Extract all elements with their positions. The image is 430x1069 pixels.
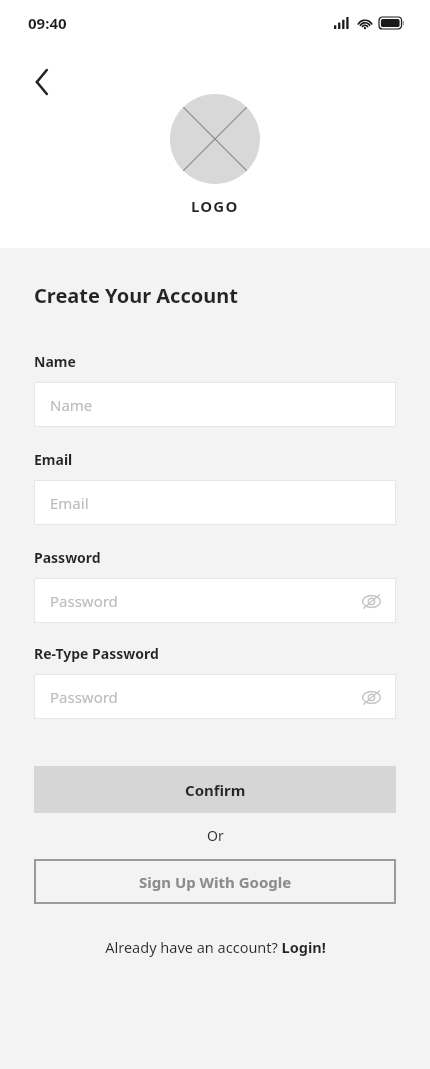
staticText: Or xyxy=(207,826,224,845)
button[interactable]: Show password xyxy=(356,682,386,712)
staticText: Password xyxy=(34,548,101,567)
button[interactable]: Sign Up With Google xyxy=(34,859,396,904)
button[interactable]: Confirm xyxy=(34,766,396,813)
button[interactable]: Show password xyxy=(356,586,386,616)
staticText: Email xyxy=(50,493,89,513)
staticText: 09:40 xyxy=(28,13,67,33)
staticText: Confirm xyxy=(185,780,246,800)
button[interactable]: Back xyxy=(22,62,62,102)
staticText: Re-Type Password xyxy=(34,644,159,663)
staticText: Name xyxy=(34,352,76,371)
button[interactable]: Name xyxy=(34,382,396,427)
staticText: Sign Up With Google xyxy=(139,872,292,892)
staticText: Name xyxy=(50,395,93,415)
staticText: Password xyxy=(50,687,118,707)
button[interactable]: Already have an account? Login! xyxy=(105,937,326,957)
button[interactable]: Email xyxy=(34,480,396,525)
staticText: Email xyxy=(34,450,73,469)
staticText: Password xyxy=(50,591,118,611)
staticText: Already have an account? Login! xyxy=(105,937,326,957)
button[interactable]: Password xyxy=(34,674,396,719)
staticText: Create Your Account xyxy=(34,282,238,309)
staticText: LOGO xyxy=(191,196,239,216)
button[interactable]: Password xyxy=(34,578,396,623)
